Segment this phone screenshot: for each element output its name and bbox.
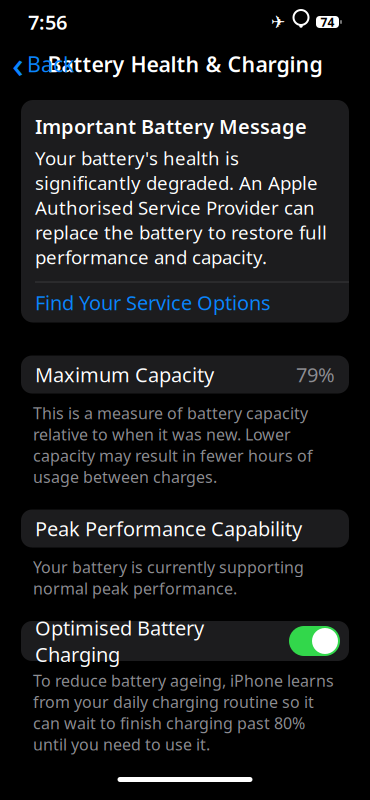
staticText: Find Your Service Options xyxy=(35,289,271,316)
staticText: Important Battery Message xyxy=(35,113,307,140)
staticText: Your battery's health is significantly d… xyxy=(35,146,327,270)
staticText: 7:56 xyxy=(28,9,67,35)
staticText: 79% xyxy=(296,361,335,388)
staticText: ✈ xyxy=(271,12,286,32)
button[interactable]: Optimised Battery Charging xyxy=(21,621,349,661)
button[interactable]: ‹ xyxy=(3,36,83,92)
staticText: This is a measure of battery capacity re… xyxy=(33,402,313,487)
staticText: Back xyxy=(27,50,74,78)
staticText: Optimised Battery Charging xyxy=(35,614,204,667)
staticText: ‹ xyxy=(12,40,24,88)
button[interactable]: Find Your Service Options xyxy=(21,282,349,322)
staticText: Peak Performance Capability xyxy=(35,515,302,542)
staticText: To reduce battery ageing, iPhone learns … xyxy=(33,670,334,755)
staticText: 74 xyxy=(320,14,334,30)
staticText: Your battery is currently supporting nor… xyxy=(33,556,304,599)
staticText: Maximum Capacity xyxy=(35,361,214,388)
staticText: Battery Health & Charging xyxy=(47,50,322,78)
